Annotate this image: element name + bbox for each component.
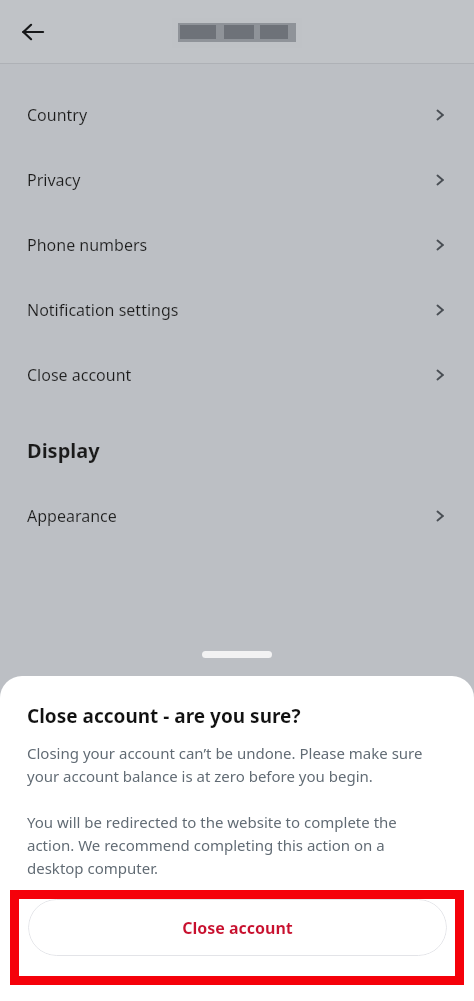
button[interactable]: Notification settings (0, 297, 474, 323)
button[interactable]: Country (0, 102, 474, 128)
staticText: Close account (27, 364, 132, 386)
staticText: Appearance (27, 505, 117, 527)
staticText: Close account (182, 917, 293, 939)
staticText: Privacy (27, 169, 81, 191)
button[interactable]: Appearance (0, 503, 474, 529)
staticText: Close account - are you sure? (27, 703, 301, 729)
button[interactable]: Close account (0, 362, 474, 388)
staticText: Display (27, 437, 100, 464)
staticText: Country (27, 104, 88, 126)
staticText: Phone numbers (27, 234, 148, 256)
button[interactable]: Close account (28, 899, 447, 956)
staticText: Closing your account can’t be undone. Pl… (27, 743, 449, 786)
button[interactable]: Phone numbers (0, 232, 474, 258)
button[interactable]: Back (12, 11, 54, 53)
staticText: Notification settings (27, 299, 179, 321)
button[interactable]: Privacy (0, 167, 474, 193)
staticText: You will be redirected to the website to… (27, 812, 434, 878)
